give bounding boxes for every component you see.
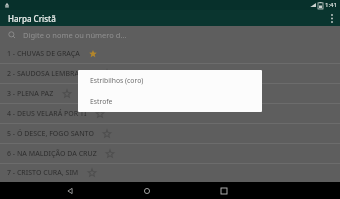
button[interactable]: Digite o nome ou número d… [0,26,340,44]
staticText: 2 - SAUDOSA LEMBRANÇA [7,69,94,79]
button[interactable]: Back [60,182,80,199]
button[interactable]: Add favourite [93,107,107,121]
staticText: 3 - PLENA PAZ [7,89,54,99]
button[interactable]: Add favourite [100,67,114,81]
button[interactable]: 6 - NA MALDIÇÃO DA CRUZ [0,144,340,163]
button[interactable]: Recent apps [214,182,234,199]
button[interactable]: 2 - SAUDOSA LEMBRANÇA [0,64,340,83]
button[interactable]: Estribilhos (coro) [78,70,262,91]
button[interactable]: Add favourite [100,127,114,141]
staticText: 1:41 [325,1,337,9]
button[interactable]: 4 - DEUS VELARÁ POR TI [0,104,340,123]
button[interactable]: Estrofe [78,91,262,112]
button[interactable]: More options [324,10,340,26]
staticText: 7 - CRISTO CURA, SIM [7,168,79,178]
staticText: 6 - NA MALDIÇÃO DA CRUZ [7,149,97,159]
button[interactable]: 7 - CRISTO CURA, SIM [0,164,340,182]
staticText: 4 - DEUS VELARÁ POR TI [7,109,87,119]
button[interactable]: 1 - CHUVAS DE GRAÇA [0,44,340,63]
staticText: 1 - CHUVAS DE GRAÇA [7,49,80,59]
button[interactable]: Add favourite [60,87,74,101]
staticText: Digite o nome ou número d… [23,30,127,40]
staticText: 5 - Ó DESCE, FOGO SANTO [7,129,94,139]
staticText: Estribilhos (coro) [90,76,144,85]
button[interactable]: Home [137,182,157,199]
staticText: Estrofe [90,97,113,106]
button[interactable]: Add favourite [85,166,99,180]
button[interactable]: Add favourite [103,147,117,161]
button[interactable]: Remove favourite [86,47,100,61]
button[interactable]: 3 - PLENA PAZ [0,84,340,103]
button[interactable]: 5 - Ó DESCE, FOGO SANTO [0,124,340,143]
staticText: Harpa Cristã [8,13,56,24]
